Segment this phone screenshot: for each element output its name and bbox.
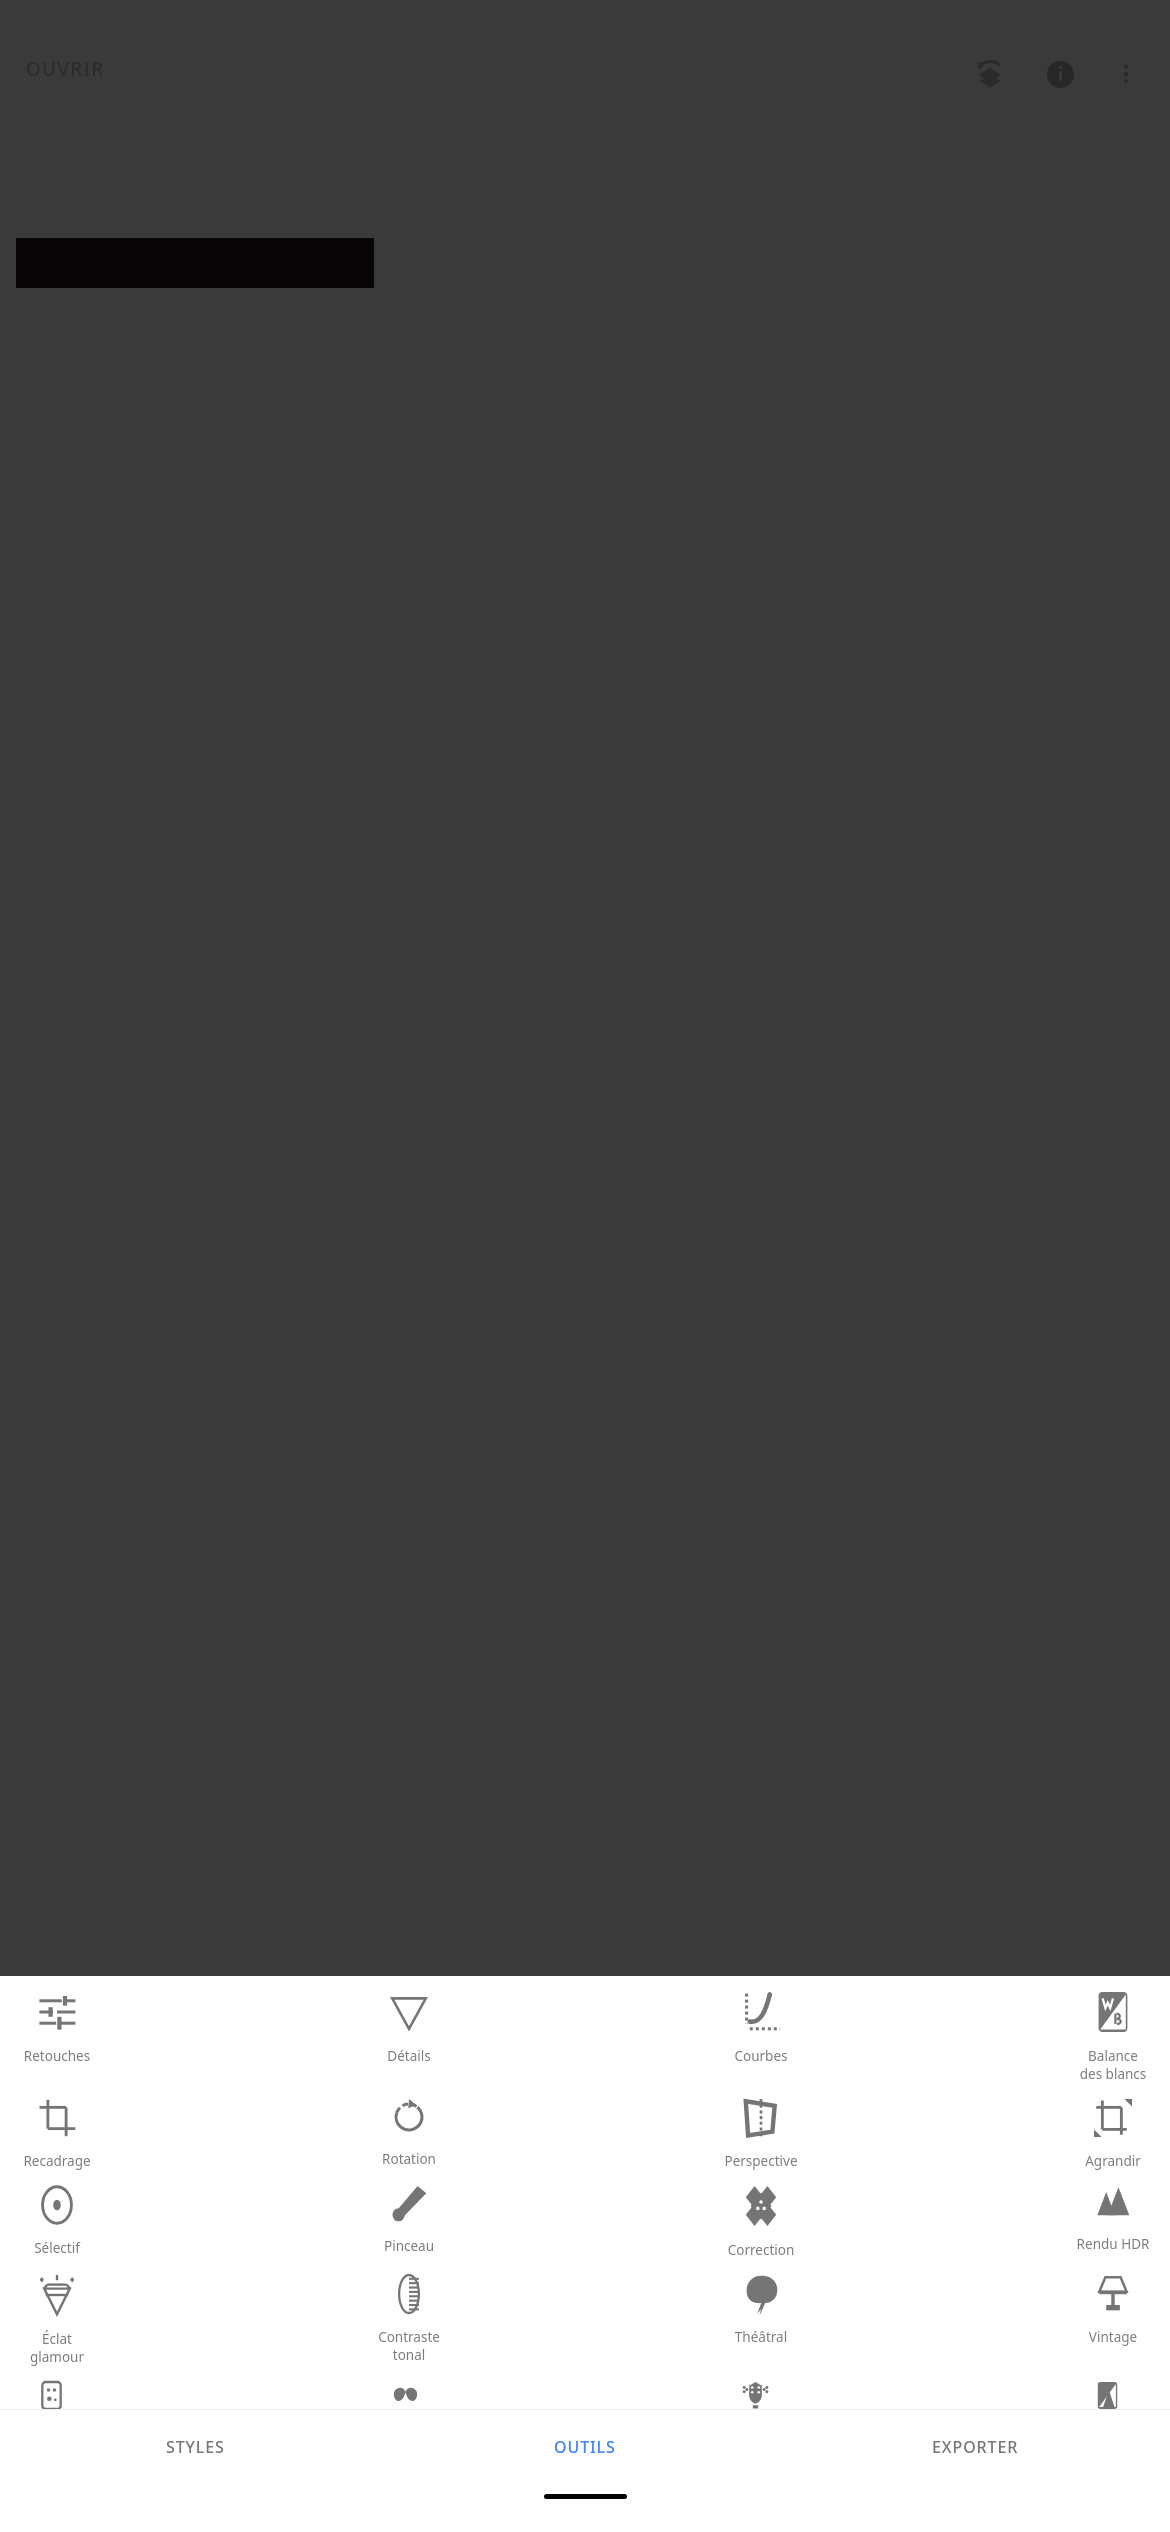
- button[interactable]: Film granuleux: [8, 2366, 106, 2409]
- staticText: Éclat glamour: [8, 2330, 106, 2366]
- staticText: OUVRIR: [26, 56, 105, 82]
- button[interactable]: Rotation: [360, 2083, 458, 2168]
- staticText: Retouches: [8, 2047, 106, 2065]
- staticText: OUTILS: [554, 2436, 616, 2458]
- button[interactable]: Correction: [712, 2170, 810, 2259]
- staticText: Courbes: [712, 2047, 810, 2065]
- button[interactable]: Agrandir: [1064, 2083, 1162, 2170]
- button[interactable]: Sélectif: [8, 2170, 106, 2257]
- button[interactable]: Retrolux: [360, 2366, 458, 2409]
- button[interactable]: Recadrage: [8, 2083, 106, 2170]
- button[interactable]: Détails: [360, 1976, 458, 2065]
- button[interactable]: Noir et blanc: [1064, 2366, 1162, 2409]
- button[interactable]: Balance des blancs: [1064, 1976, 1162, 2083]
- staticText: Vintage: [1064, 2328, 1162, 2346]
- staticText: Balance des blancs: [1064, 2047, 1162, 2083]
- staticText: Rendu HDR: [1064, 2235, 1162, 2253]
- staticText: EXPORTER: [932, 2436, 1019, 2458]
- button[interactable]: Perspective: [712, 2083, 810, 2170]
- button[interactable]: STYLES: [0, 2410, 390, 2484]
- button[interactable]: Informations: [1038, 52, 1082, 96]
- staticText: Perspective: [712, 2152, 810, 2170]
- button[interactable]: Grunge: [712, 2366, 810, 2409]
- button[interactable]: Rendu HDR: [1064, 2170, 1162, 2253]
- button[interactable]: OUTILS: [390, 2410, 780, 2484]
- staticText: Recadrage: [8, 2152, 106, 2170]
- button[interactable]: Théâtral: [712, 2259, 810, 2346]
- button[interactable]: Courbes: [712, 1976, 810, 2065]
- staticText: Détails: [360, 2047, 458, 2065]
- staticText: Correction: [712, 2241, 810, 2259]
- staticText: Agrandir: [1064, 2152, 1162, 2170]
- button[interactable]: EXPORTER: [780, 2410, 1170, 2484]
- staticText: Contraste tonal: [360, 2328, 458, 2364]
- staticText: Pinceau: [360, 2237, 458, 2255]
- staticText: Théâtral: [712, 2328, 810, 2346]
- button[interactable]: Pinceau: [360, 2170, 458, 2255]
- button[interactable]: Vintage: [1064, 2259, 1162, 2346]
- button[interactable]: Annuler: [968, 52, 1012, 96]
- staticText: Rotation: [360, 2150, 458, 2168]
- staticText: Sélectif: [8, 2239, 106, 2257]
- staticText: STYLES: [166, 2436, 225, 2458]
- button[interactable]: Retouches: [8, 1976, 106, 2065]
- button[interactable]: Contraste tonal: [360, 2259, 458, 2364]
- button[interactable]: Éclat glamour: [8, 2259, 106, 2366]
